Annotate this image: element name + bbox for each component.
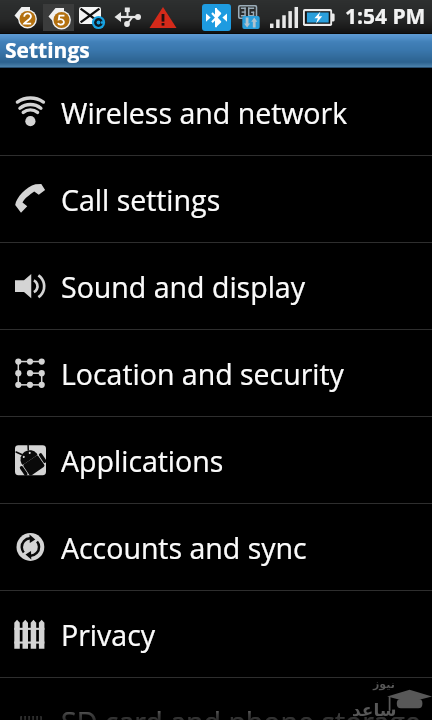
staticText: Wireless and network — [61, 94, 348, 133]
staticText: Accounts and sync — [61, 529, 307, 568]
staticText: Call settings — [61, 181, 221, 220]
button[interactable]: Call settings — [0, 156, 432, 242]
staticText: Applications — [61, 442, 224, 481]
button[interactable]: Privacy — [0, 591, 432, 677]
staticText: Privacy — [61, 616, 156, 655]
button[interactable]: SD card and phone storage — [0, 678, 432, 720]
staticText: 1:54 PM — [345, 2, 426, 31]
button[interactable]: Applications — [0, 417, 432, 503]
staticText: SD card and phone storage — [61, 703, 421, 720]
button[interactable]: Accounts and sync — [0, 504, 432, 590]
staticText: Sound and display — [61, 268, 306, 307]
button[interactable]: Wireless and network — [0, 69, 432, 155]
staticText: ساعد — [352, 700, 397, 720]
button[interactable]: Location and security — [0, 330, 432, 416]
staticText: Location and security — [61, 355, 344, 394]
staticText: نیوز — [373, 678, 395, 691]
button[interactable]: Sound and display — [0, 243, 432, 329]
staticText: Settings — [5, 36, 90, 65]
